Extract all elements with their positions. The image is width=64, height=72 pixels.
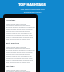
staticText: TOP HASHTAGS: [18, 2, 46, 7]
staticText: The Best Hashtags For Instagram Posts: [20, 8, 45, 14]
staticText: Lorem ipsum dolor sit amet consectetur a…: [6, 46, 35, 64]
staticText: Lorem ipsum dolor sit amet consectetur a…: [6, 23, 35, 41]
staticText: Top tags: [6, 65, 15, 68]
staticText: Best practice: [6, 42, 19, 45]
staticText: Hashtags: [6, 19, 16, 22]
staticText: Lorem ipsum dolor sit amet consectetur a…: [6, 69, 35, 72]
